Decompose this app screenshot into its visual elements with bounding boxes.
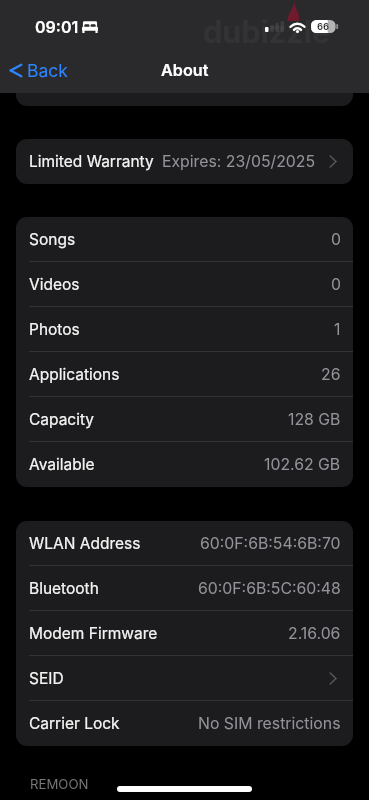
button[interactable]: Capacity [16,397,353,442]
button[interactable]: Carrier Lock [16,701,353,746]
staticText: Bluetooth [29,579,99,598]
staticText: Capacity [29,410,95,429]
staticText: 26 [321,365,341,384]
staticText: 66 [317,21,330,32]
staticText: 09:01 [35,17,79,36]
staticText: Applications [29,365,120,384]
staticText: 102.62 GB [264,455,341,474]
staticText: WLAN Address [29,534,141,553]
staticText: About [161,60,209,80]
staticText: Available [29,455,95,474]
button[interactable]: Available [16,442,353,487]
staticText: 60:0F:6B:54:6B:70 [200,534,341,553]
staticText: SEID [29,669,64,688]
button[interactable]: Photos [16,307,353,352]
button[interactable]: Modem Firmware [16,611,353,656]
staticText: Limited Warranty [29,152,154,171]
staticText: 1 [334,320,341,339]
staticText: Photos [29,320,80,339]
staticText: Videos [29,275,80,294]
button[interactable]: Bluetooth [16,566,353,611]
button[interactable]: Back [0,54,78,87]
staticText: 0 [331,275,341,294]
button[interactable]: Limited Warranty [16,139,353,184]
staticText: 128 GB [288,410,341,429]
button[interactable]: Videos [16,262,353,307]
staticText: Songs [29,230,76,249]
button[interactable]: SEID [16,656,353,701]
staticText: 60:0F:6B:5C:60:48 [198,579,341,598]
staticText: 0 [331,230,341,249]
staticText: Back [27,60,68,81]
button[interactable]: Songs [16,217,353,262]
button[interactable]: WLAN Address [16,521,353,566]
staticText: 2.16.06 [288,624,341,643]
staticText: Carrier Lock [29,714,120,733]
staticText: Modem Firmware [29,624,158,643]
staticText: No SIM restrictions [198,714,341,733]
button[interactable]: Applications [16,352,353,397]
staticText: Expires: 23/05/2025 [162,152,316,171]
staticText: dubizzle [203,13,331,51]
staticText: REMOON [30,776,89,792]
